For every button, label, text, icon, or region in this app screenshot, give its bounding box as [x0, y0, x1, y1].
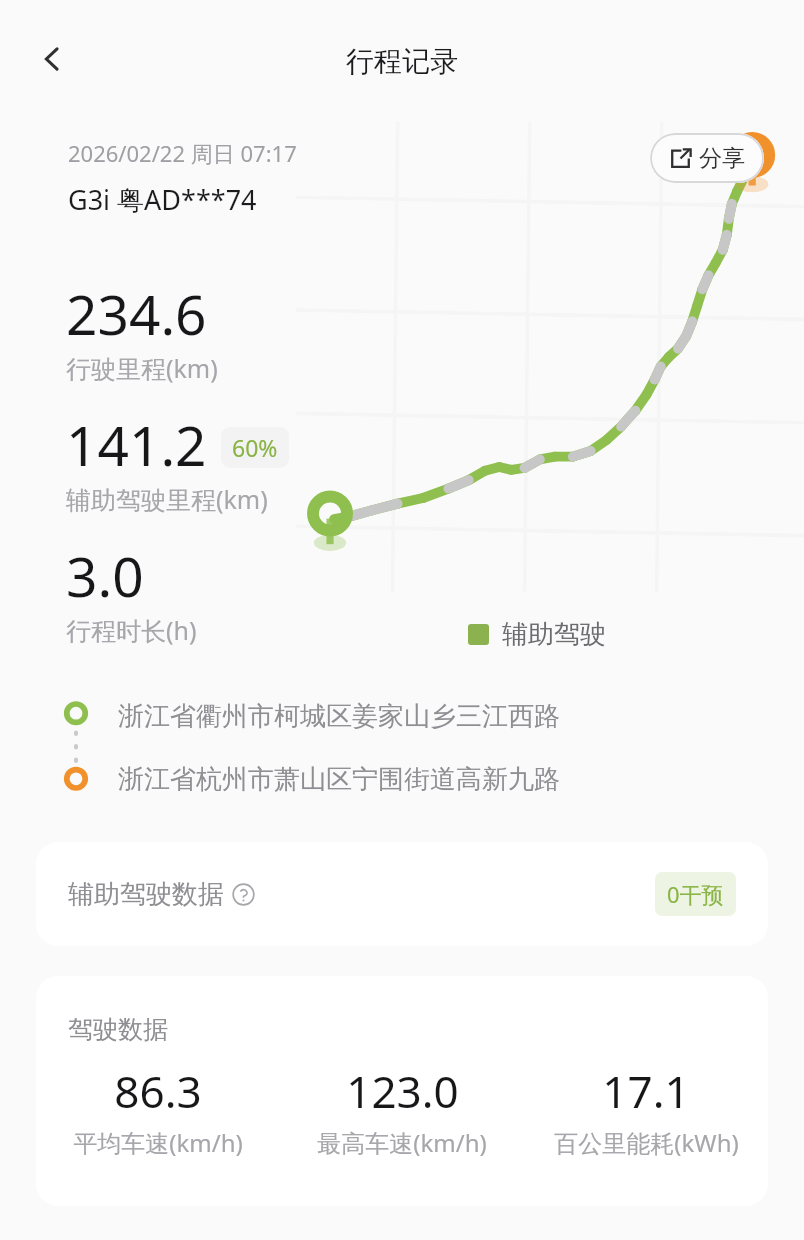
staticText: 3.0 [66, 538, 144, 613]
button[interactable]: Back [22, 29, 82, 89]
staticText: 行程记录 [346, 44, 458, 79]
staticText: 141.2 [66, 407, 207, 482]
button[interactable]: 驾驶数据 [36, 976, 768, 1206]
staticText: 行程时长(h) [66, 613, 197, 647]
staticText: 86.3 [114, 1061, 202, 1121]
staticText: 2026/02/22 周日 07:17 [68, 138, 297, 168]
staticText: 123.0 [346, 1061, 459, 1121]
staticText: 分享 [699, 144, 745, 173]
staticText: 辅助驾驶里程(km) [66, 482, 268, 516]
staticText: 最高车速(km/h) [317, 1126, 487, 1159]
staticText: G3i 粤AD***74 [68, 181, 257, 218]
staticText: 平均车速(km/h) [73, 1126, 243, 1159]
staticText: 百公里能耗(kWh) [554, 1126, 739, 1159]
staticText: 浙江省杭州市萧山区宁围街道高新九路 [118, 763, 560, 796]
staticText: 60% [232, 432, 278, 463]
staticText: 17.1 [602, 1061, 690, 1121]
staticText: 行驶里程(km) [66, 351, 218, 385]
staticText: 驾驶数据 [68, 1014, 168, 1045]
staticText: 234.6 [66, 276, 207, 351]
button[interactable]: 辅助驾驶数据 [36, 842, 768, 946]
staticText: 辅助驾驶数据 [68, 878, 224, 911]
staticText: 辅助驾驶 [502, 618, 606, 651]
staticText: 浙江省衢州市柯城区姜家山乡三江西路 [118, 700, 560, 733]
button[interactable]: 分享 [650, 133, 764, 183]
staticText: 0干预 [667, 879, 724, 909]
